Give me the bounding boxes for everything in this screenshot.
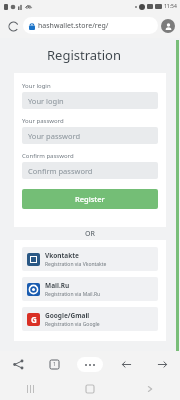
staticText: Google/Gmail [45,311,90,320]
button[interactable]: Register [22,189,158,209]
staticText: Your login [22,82,51,90]
staticText: Confirm password [28,166,93,176]
button[interactable]: Mail.Ru [22,277,158,301]
button[interactable]: Vkontakte [22,247,158,271]
button[interactable]: Account [161,19,175,33]
button[interactable]: Recents [0,378,60,400]
staticText: Registration via Mail.Ru [45,291,101,298]
staticText: Mail.Ru [45,281,70,290]
staticText: Confirm password [22,152,74,160]
staticText: Registration via Vkontakte [45,261,107,268]
button[interactable]: Back [120,378,180,400]
staticText: Vkontakte [45,251,79,260]
staticText: Register [75,194,105,204]
button[interactable]: Reload [5,18,21,34]
staticText: 11:54 [164,3,177,10]
button[interactable]: Confirm password [22,162,158,179]
staticText: Your login [28,96,64,106]
button[interactable]: Tabs [36,351,72,378]
button[interactable]: Share [0,351,36,378]
button[interactable]: Back [108,351,144,378]
button[interactable]: Forward [144,351,180,378]
staticText: OR [85,229,95,239]
staticText: Your password [28,131,81,141]
button[interactable]: Your login [22,92,158,109]
button[interactable]: G [22,307,158,331]
button[interactable]: More options [77,357,103,372]
button[interactable]: Your password [22,127,158,144]
button[interactable]: hashwallet.store/reg/ [23,17,158,34]
staticText: Your password [22,117,64,125]
button[interactable]: Home [60,378,120,400]
staticText: G [31,314,37,325]
staticText: hashwallet.store/reg/ [38,21,109,31]
staticText: Registration [0,46,168,64]
staticText: 1 [53,361,56,368]
staticText: Registration via Google [45,321,100,328]
